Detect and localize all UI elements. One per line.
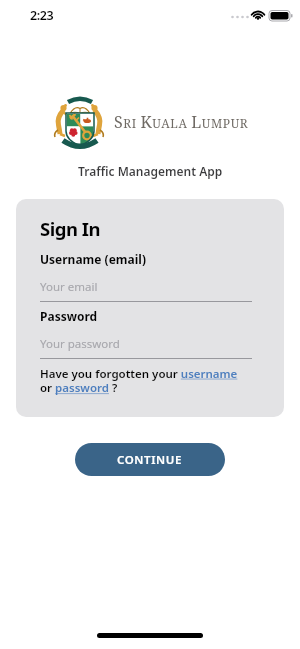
staticText: 2:23 xyxy=(30,7,54,24)
staticText: Username (email) xyxy=(40,251,146,267)
button[interactable]: Have you forgotten your username or pass… xyxy=(40,366,238,396)
staticText: Traffic Management App xyxy=(78,163,223,179)
staticText: SRI KUALA LUMPUR xyxy=(114,111,249,133)
button[interactable]: CONTINUE xyxy=(75,443,225,476)
staticText: Have you forgotten your username or pass… xyxy=(40,366,238,396)
staticText: Your email xyxy=(40,279,98,295)
button[interactable]: Your email xyxy=(40,279,260,295)
button[interactable]: Your password xyxy=(40,336,260,352)
staticText: CONTINUE xyxy=(117,452,183,468)
staticText: Your password xyxy=(40,336,120,352)
staticText: Sign In xyxy=(40,216,100,241)
staticText: Password xyxy=(40,308,98,324)
